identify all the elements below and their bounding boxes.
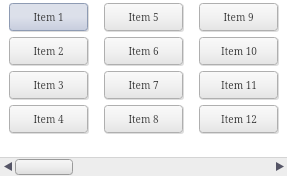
staticText: Item 9 [223, 10, 254, 24]
button[interactable]: Item 3 [9, 71, 88, 99]
staticText: Item 5 [128, 10, 159, 24]
button[interactable]: Item 4 [9, 105, 88, 133]
staticText: Item 12 [221, 112, 257, 126]
staticText: Item 8 [128, 112, 159, 126]
staticText: Item 10 [221, 44, 257, 58]
button[interactable]: Scroll right [272, 157, 287, 176]
button[interactable]: Scroll left [0, 157, 15, 176]
staticText: Item 1 [33, 10, 64, 24]
staticText: Item 11 [221, 78, 257, 92]
button[interactable]: Item 7 [104, 71, 183, 99]
button[interactable]: Item 1 [9, 3, 88, 31]
staticText: Item 6 [128, 44, 159, 58]
button[interactable]: Item 2 [9, 37, 88, 65]
button[interactable]: Item 11 [199, 71, 278, 99]
staticText: Item 4 [33, 112, 64, 126]
button[interactable]: Item 9 [199, 3, 278, 31]
button[interactable]: Item 10 [199, 37, 278, 65]
staticText: Item 7 [128, 78, 159, 92]
staticText: Item 2 [33, 44, 64, 58]
button[interactable] [15, 159, 73, 175]
button[interactable]: Item 8 [104, 105, 183, 133]
button[interactable]: Item 12 [199, 105, 278, 133]
button[interactable]: Item 5 [104, 3, 183, 31]
button[interactable]: Item 6 [104, 37, 183, 65]
staticText: Item 3 [33, 78, 64, 92]
